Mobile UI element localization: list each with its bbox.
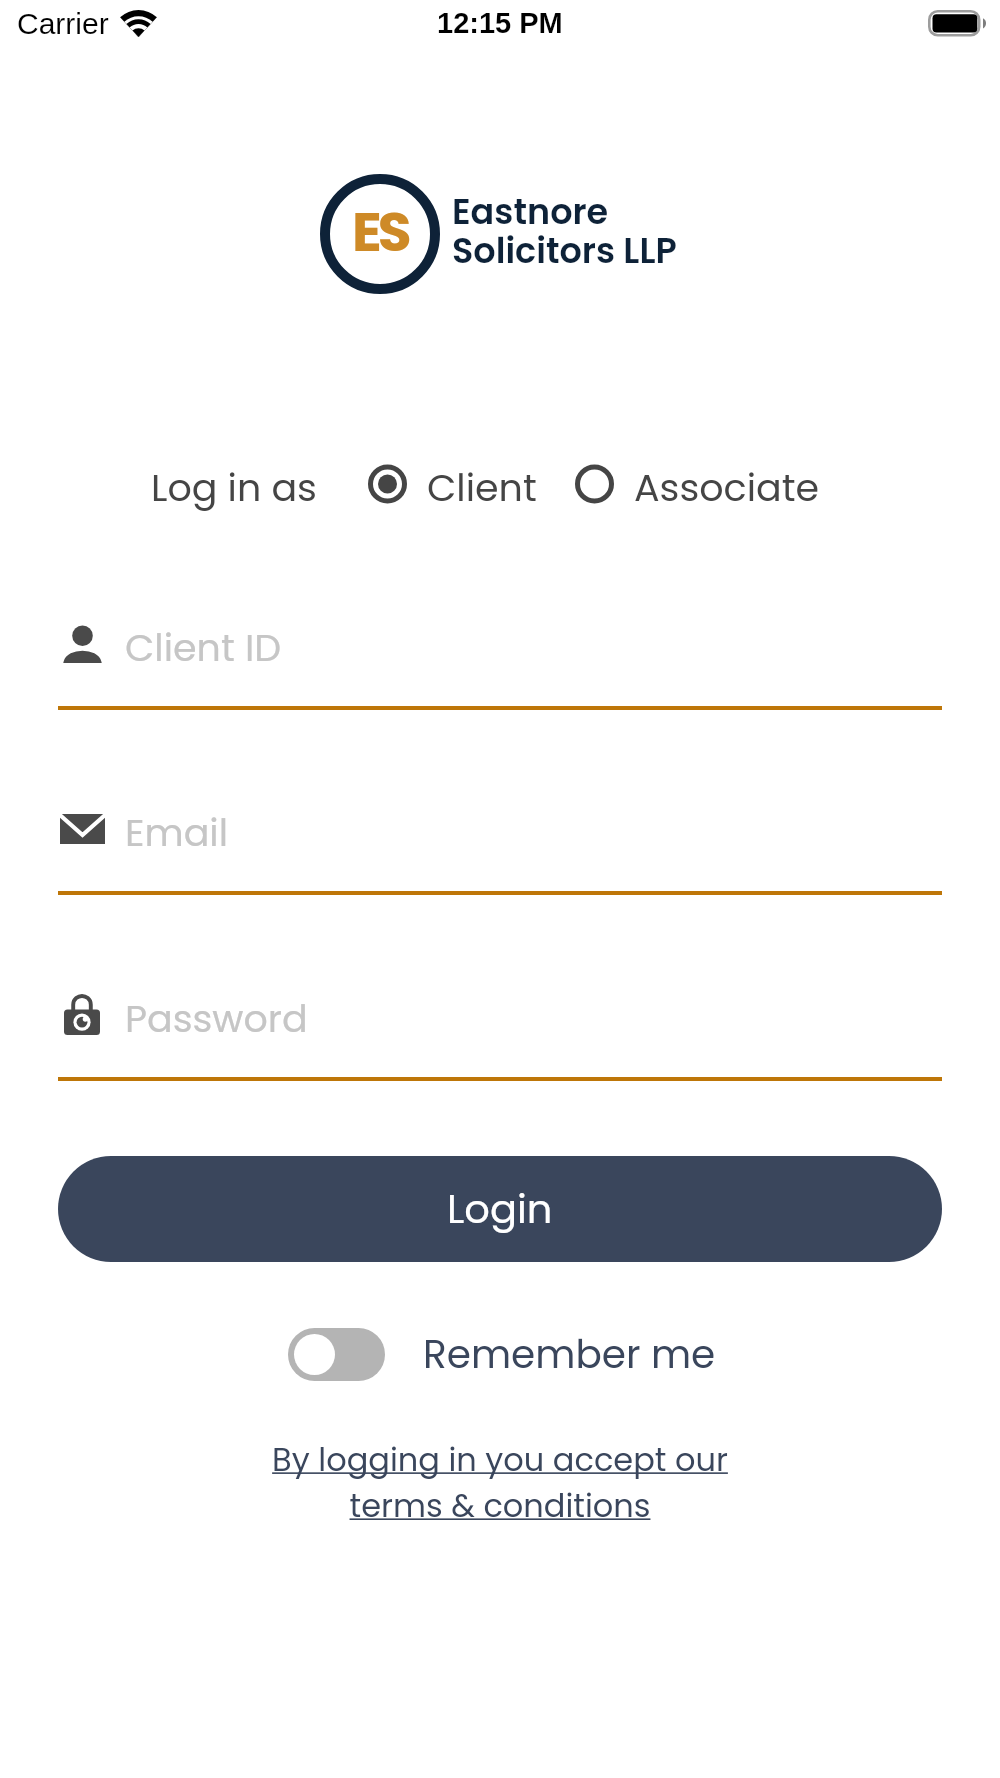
staticText: By logging in you accept our terms & con…: [250, 1437, 750, 1528]
staticText: Eastnore: [452, 187, 609, 236]
button[interactable]: By logging in you accept our terms & con…: [250, 1437, 750, 1528]
staticText: Password: [125, 992, 308, 1045]
button[interactable]: Login: [58, 1156, 942, 1262]
button[interactable]: Client ID: [58, 615, 942, 711]
staticText: Email: [125, 806, 229, 859]
staticText: Carrier: [17, 7, 109, 41]
staticText: Associate: [634, 461, 820, 514]
button[interactable]: Password: [58, 986, 942, 1082]
staticText: Remember me: [423, 1327, 716, 1382]
button[interactable]: Remember me toggle: [288, 1328, 385, 1381]
button[interactable]: Client: [365, 461, 537, 514]
button[interactable]: Associate: [572, 461, 820, 514]
staticText: ES: [352, 193, 408, 270]
staticText: Solicitors LLP: [452, 226, 677, 275]
staticText: Login: [447, 1181, 553, 1237]
staticText: Log in as: [151, 461, 317, 514]
staticText: Client: [427, 461, 537, 514]
button[interactable]: Email: [58, 800, 942, 896]
staticText: Client ID: [125, 621, 282, 674]
staticText: 12:15 PM: [437, 7, 563, 39]
